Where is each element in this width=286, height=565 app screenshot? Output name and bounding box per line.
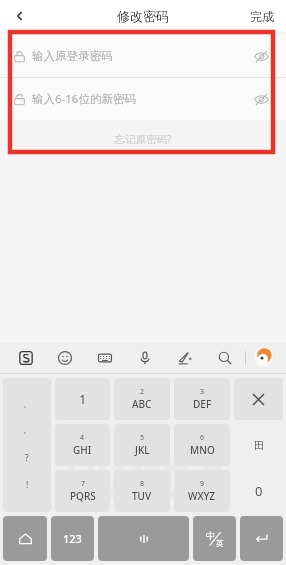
button[interactable]: Search bbox=[205, 343, 245, 373]
staticText: HWIDC bbox=[63, 449, 224, 512]
button[interactable]: Delete bbox=[234, 378, 283, 420]
staticText: 中 bbox=[206, 530, 215, 541]
staticText: DEF bbox=[193, 397, 212, 411]
button[interactable]: 5 bbox=[114, 424, 170, 466]
button[interactable]: 4 bbox=[55, 424, 110, 466]
button[interactable]: Sogou bbox=[6, 343, 45, 373]
button[interactable]: Hide keyboard bbox=[246, 343, 280, 373]
staticText: TUV bbox=[132, 489, 152, 503]
button[interactable]: Handwriting bbox=[165, 343, 205, 373]
staticText: ! bbox=[26, 479, 29, 491]
staticText: 123 bbox=[63, 531, 82, 546]
staticText: ? bbox=[25, 452, 29, 464]
button[interactable]: Switch language bbox=[193, 516, 236, 561]
staticText: 9 bbox=[200, 479, 205, 489]
button[interactable]: 、 bbox=[3, 378, 51, 512]
staticText: WXYZ bbox=[188, 489, 216, 503]
staticText: 0 bbox=[255, 482, 263, 500]
button[interactable]: 9 bbox=[174, 470, 230, 512]
staticText: 忘记原密码? bbox=[114, 132, 172, 146]
staticText: 7 bbox=[81, 479, 86, 489]
button[interactable]: 2 bbox=[114, 378, 170, 420]
staticText: 、 bbox=[23, 399, 32, 410]
staticText: GHI bbox=[73, 443, 92, 457]
button[interactable]: 输入原登录密码 bbox=[0, 35, 286, 77]
button[interactable]: 输入6-16位的新密码 bbox=[0, 78, 286, 120]
button[interactable]: 3 bbox=[174, 378, 230, 420]
button[interactable]: Home bbox=[3, 516, 47, 561]
staticText: 8 bbox=[140, 479, 145, 489]
staticText: 3 bbox=[200, 387, 205, 397]
button[interactable]: 7 bbox=[55, 470, 110, 512]
staticText: 6 bbox=[200, 433, 205, 443]
button[interactable]: Symbols bbox=[234, 424, 283, 466]
button[interactable]: Assistant bbox=[254, 347, 274, 367]
button[interactable]: Emoji bbox=[45, 343, 85, 373]
staticText: 田 bbox=[254, 439, 264, 452]
button[interactable]: 123 bbox=[51, 516, 94, 561]
staticText: 英 bbox=[216, 539, 224, 548]
staticText: 2 bbox=[140, 387, 145, 397]
button[interactable]: 忘记原密码? bbox=[110, 128, 176, 150]
staticText: PQRS bbox=[70, 489, 96, 503]
button[interactable]: 8 bbox=[114, 470, 170, 512]
button[interactable]: Keyboard bbox=[85, 343, 125, 373]
staticText: 完成 bbox=[250, 9, 274, 24]
staticText: 输入原登录密码 bbox=[32, 49, 113, 63]
staticText: 1 bbox=[79, 390, 87, 408]
button[interactable]: 完成 bbox=[238, 0, 286, 32]
staticText: 。 bbox=[23, 425, 32, 436]
button[interactable]: 0 bbox=[234, 470, 283, 512]
staticText: 修改密码 bbox=[117, 8, 169, 24]
button[interactable]: Space bbox=[98, 516, 189, 561]
button[interactable]: Enter bbox=[240, 516, 283, 561]
button[interactable]: Show password bbox=[250, 45, 272, 67]
button[interactable]: Back bbox=[0, 0, 40, 32]
staticText: 5 bbox=[140, 433, 145, 443]
staticText: 4 bbox=[80, 433, 85, 443]
staticText: ABC bbox=[132, 397, 152, 411]
staticText: 输入6-16位的新密码 bbox=[32, 91, 136, 107]
button[interactable]: Voice input bbox=[125, 343, 165, 373]
button[interactable]: Show password bbox=[250, 88, 272, 110]
button[interactable]: 1 bbox=[55, 378, 110, 420]
staticText: JKL bbox=[135, 443, 150, 457]
button[interactable]: 6 bbox=[174, 424, 230, 466]
staticText: MNO bbox=[190, 443, 215, 457]
